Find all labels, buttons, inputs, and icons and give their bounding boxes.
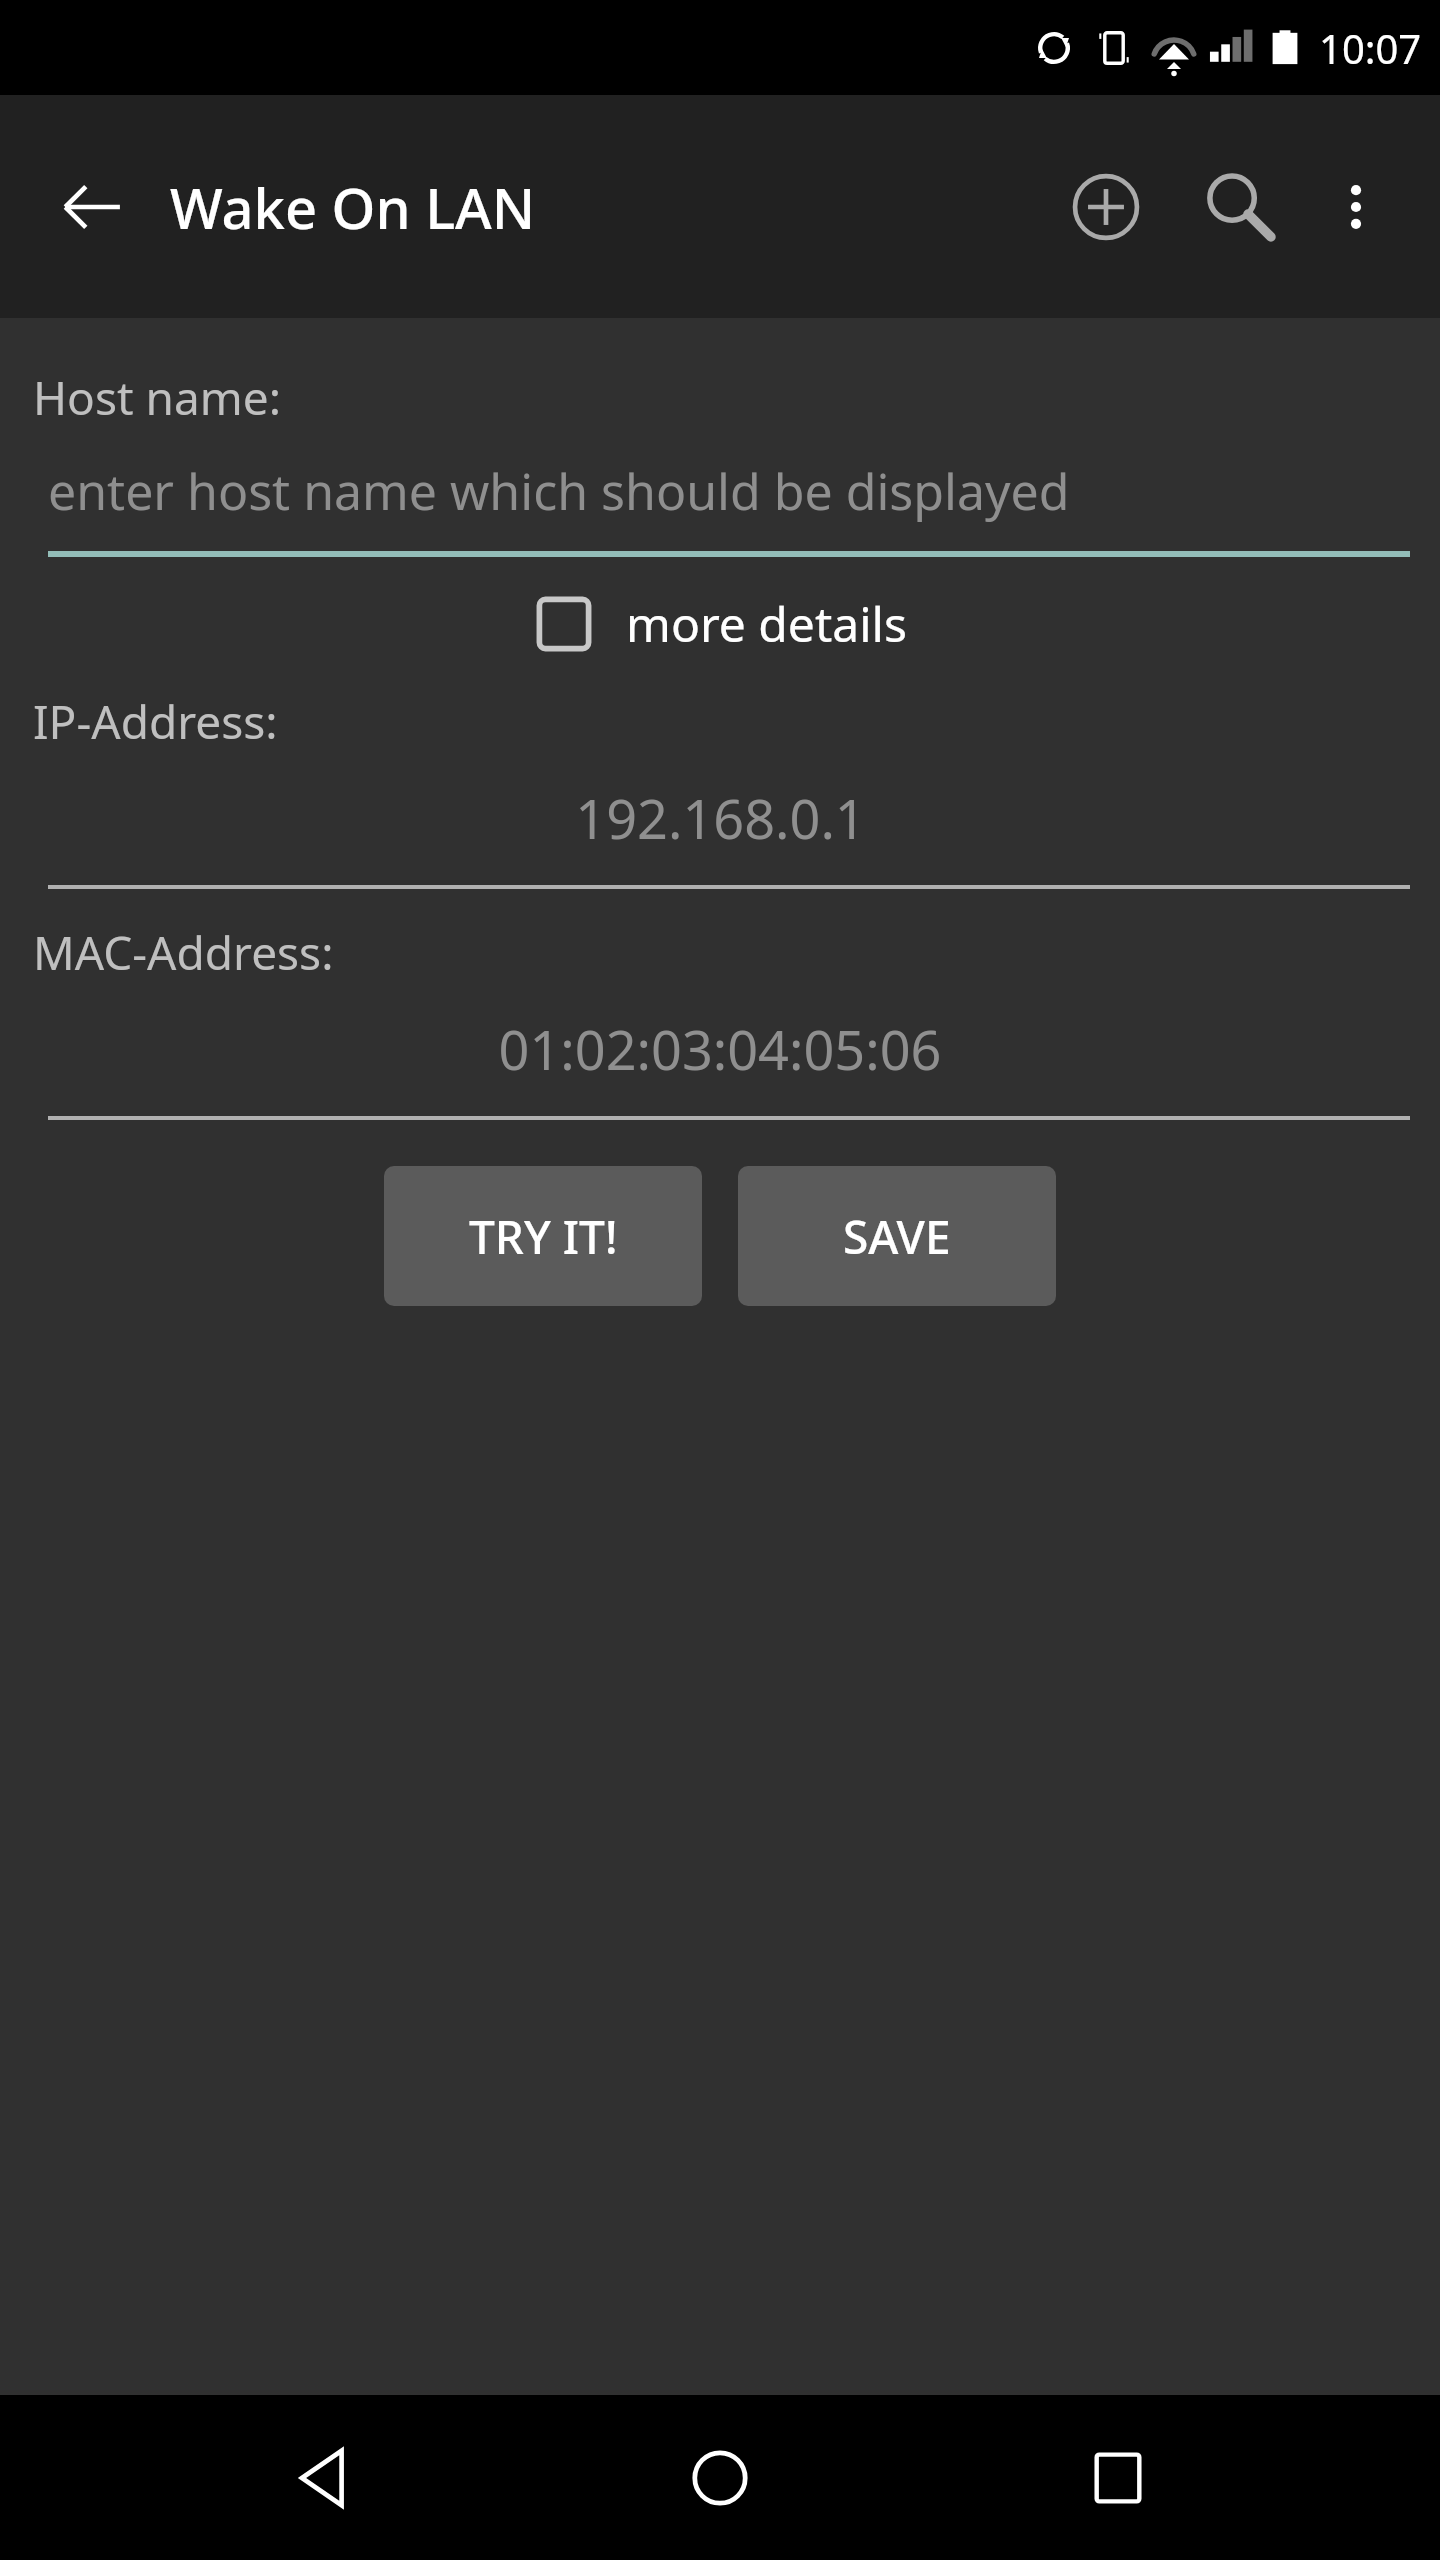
staticText: IP-Address: (33, 690, 278, 753)
button[interactable]: 192.168.0.1 (48, 781, 1392, 855)
staticText: MAC-Address: (33, 921, 334, 984)
staticText: Host name: (33, 366, 282, 429)
button[interactable]: Home (645, 2403, 795, 2553)
staticText: enter host name which should be displaye… (48, 457, 1070, 525)
button[interactable]: SAVE (738, 1166, 1056, 1306)
button[interactable]: 01:02:03:04:05:06 (48, 1012, 1392, 1086)
button[interactable]: Back (248, 2403, 398, 2553)
button[interactable]: Add (1046, 147, 1166, 267)
button[interactable]: enter host name which should be displaye… (48, 457, 1410, 525)
staticText: more details (626, 591, 907, 656)
staticText: TRY IT! (469, 1205, 618, 1268)
button[interactable]: Search (1178, 147, 1298, 267)
staticText: SAVE (843, 1205, 951, 1268)
staticText: 192.168.0.1 (575, 781, 866, 855)
staticText: Wake On LAN (170, 169, 1046, 245)
button[interactable]: more details (0, 591, 1440, 656)
button[interactable]: Back (40, 155, 144, 259)
staticText: 10:07 (1319, 21, 1422, 75)
button[interactable]: More options (1302, 153, 1410, 261)
staticText: 01:02:03:04:05:06 (498, 1012, 942, 1086)
button[interactable]: TRY IT! (384, 1166, 702, 1306)
button[interactable]: Recent apps (1043, 2403, 1193, 2553)
